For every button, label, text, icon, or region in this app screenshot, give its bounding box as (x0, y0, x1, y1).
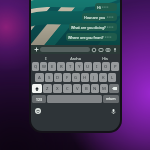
staticText: Where are you from? (68, 35, 104, 40)
button[interactable]: GIF (97, 46, 104, 53)
button[interactable]: V (73, 84, 81, 93)
button[interactable]: 123 (32, 95, 46, 103)
button[interactable]: Add attachment (33, 46, 40, 53)
button[interactable]: K (99, 73, 107, 82)
staticText: 123 (36, 97, 42, 102)
staticText: U (86, 64, 90, 70)
staticText: X (56, 86, 59, 92)
staticText: N (93, 86, 97, 92)
staticText: M (102, 86, 106, 92)
staticText: G (74, 75, 78, 81)
staticText: S (48, 75, 51, 81)
button[interactable]: Hi (95, 3, 117, 11)
staticText: J (93, 75, 95, 81)
button[interactable]: G (72, 73, 80, 82)
staticText: B (85, 86, 88, 92)
staticText: I (96, 64, 98, 70)
button[interactable]: Y (75, 62, 83, 71)
button[interactable]: return (103, 95, 119, 103)
button[interactable]: His (90, 54, 120, 62)
staticText: R (60, 64, 63, 70)
button[interactable]: F (63, 73, 71, 82)
button[interactable]: D (54, 73, 62, 82)
button[interactable]: W (40, 62, 47, 71)
button[interactable]: Emoji (34, 107, 42, 115)
staticText: Ascha (70, 56, 81, 61)
button[interactable]: C (63, 84, 72, 93)
button[interactable]: X (53, 84, 62, 93)
button[interactable]: H (81, 73, 89, 82)
button[interactable]: N (91, 84, 99, 93)
staticText: How are you (84, 15, 106, 20)
staticText: Z (46, 86, 49, 92)
staticText: O (104, 64, 108, 70)
staticText: return (106, 97, 116, 101)
button[interactable]: Shift (32, 84, 42, 93)
button[interactable]: Z (43, 84, 52, 93)
button[interactable]: Where are you from? (66, 33, 117, 41)
button[interactable]: Space (47, 95, 102, 103)
button[interactable] (40, 47, 90, 52)
button[interactable]: R (57, 62, 65, 71)
staticText: Y (78, 64, 81, 70)
button[interactable]: Camera (104, 46, 111, 53)
staticText: P (114, 64, 117, 70)
button[interactable]: Q (32, 62, 39, 71)
button[interactable]: I (93, 62, 101, 71)
staticText: H (83, 75, 87, 81)
staticText: T (69, 64, 72, 70)
button[interactable]: A (35, 73, 44, 82)
staticText: What are you doing? (71, 25, 106, 30)
button[interactable]: How are you (82, 13, 117, 21)
staticText: C (66, 86, 69, 92)
staticText: L (111, 75, 114, 81)
button[interactable]: Sticker (90, 46, 97, 53)
button[interactable]: Voice input (109, 107, 117, 115)
button[interactable]: Backspace (109, 84, 119, 93)
staticText: Q (34, 64, 38, 70)
staticText: His (102, 56, 108, 61)
button[interactable]: I (31, 54, 60, 62)
button[interactable]: Voice (111, 46, 118, 53)
button[interactable]: O (102, 62, 110, 71)
staticText: E (51, 64, 54, 70)
staticText: F (66, 75, 69, 81)
button[interactable]: L (108, 73, 116, 82)
button[interactable]: M (100, 84, 108, 93)
staticText: Hi (97, 5, 101, 10)
button[interactable]: E (48, 62, 56, 71)
button[interactable]: T (66, 62, 74, 71)
button[interactable]: U (84, 62, 92, 71)
staticText: D (56, 75, 60, 81)
button[interactable]: B (82, 84, 90, 93)
button[interactable]: P (111, 62, 119, 71)
button[interactable]: Ascha (60, 54, 90, 62)
staticText: I (45, 56, 47, 61)
button[interactable]: S (45, 73, 53, 82)
staticText: A (38, 75, 41, 81)
staticText: K (102, 75, 105, 81)
staticText: W (42, 64, 46, 70)
staticText: V (76, 86, 79, 92)
button[interactable]: J (90, 73, 98, 82)
button[interactable]: What are you doing? (69, 23, 117, 31)
